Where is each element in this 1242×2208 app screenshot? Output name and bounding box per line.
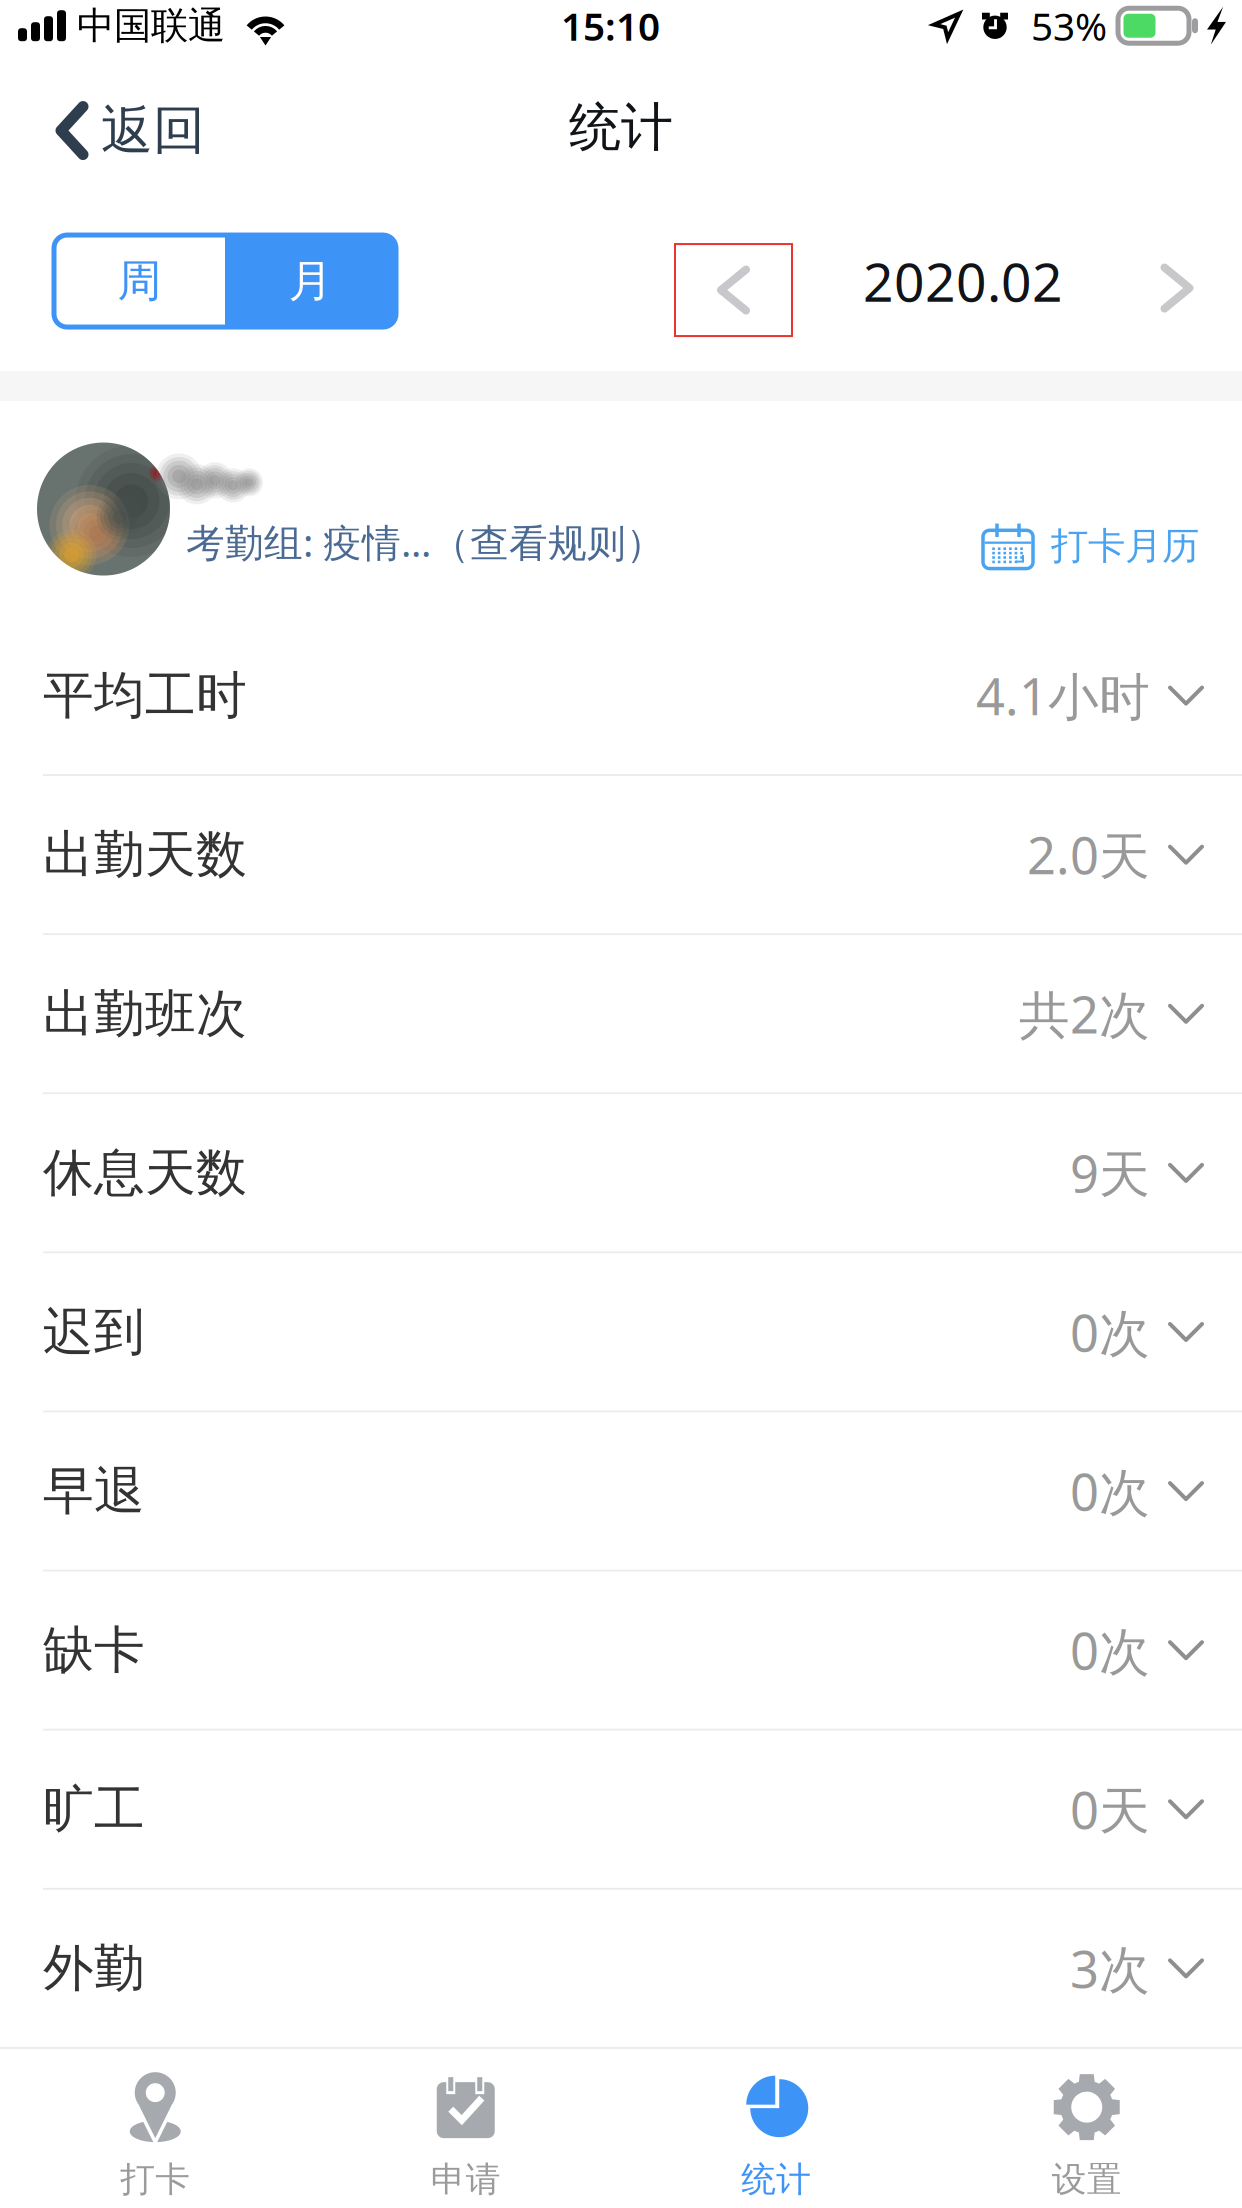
staticText: 返回 <box>101 99 205 162</box>
staticText: 共2次 <box>1019 980 1150 1047</box>
staticText: 平均工时 <box>43 664 247 727</box>
staticText: 3次 <box>1070 1935 1150 2002</box>
staticText: 2.0天 <box>1027 821 1150 888</box>
staticText: 0次 <box>1070 1298 1150 1366</box>
button[interactable]: 打卡 <box>0 2049 310 2208</box>
button[interactable]: 缺卡 <box>0 1572 1242 1729</box>
staticText: 统计 <box>569 96 673 159</box>
staticText: 早退 <box>43 1460 145 1522</box>
button[interactable]: 平均工时 <box>0 617 1242 774</box>
button[interactable]: 迟到 <box>0 1253 1242 1411</box>
staticText: 打卡 <box>120 2158 190 2201</box>
button[interactable]: 休息天数 <box>0 1094 1242 1251</box>
button[interactable]: 设置 <box>931 2049 1242 2208</box>
button[interactable]: Previous month <box>683 235 800 327</box>
staticText: 0天 <box>1070 1776 1150 1843</box>
button[interactable]: 月 <box>225 235 396 327</box>
staticText: 2020.02 <box>863 246 1063 316</box>
button[interactable]: Next month <box>1149 235 1219 327</box>
staticText: 月 <box>288 254 332 308</box>
staticText: 考勤组: 疫情...（查看规则） <box>186 516 665 568</box>
staticText: 4.1小时 <box>976 662 1150 729</box>
staticText: 打卡月历 <box>1051 523 1199 569</box>
staticText: 迟到 <box>43 1301 145 1363</box>
staticText: 出勤班次 <box>43 983 247 1045</box>
staticText: 0次 <box>1070 1617 1150 1684</box>
staticText: 外勤 <box>43 1937 145 1999</box>
staticText: 53% <box>1031 0 1107 51</box>
staticText: 申请 <box>431 2158 501 2201</box>
staticText: 0次 <box>1070 1457 1150 1525</box>
button[interactable]: 返回 <box>39 83 227 178</box>
button[interactable]: 早退 <box>0 1412 1242 1570</box>
staticText: 出勤天数 <box>43 824 247 886</box>
staticText: 统计 <box>741 2158 811 2201</box>
staticText: 周 <box>117 254 161 308</box>
button[interactable]: 出勤天数 <box>0 776 1242 933</box>
button[interactable]: 外勤 <box>0 1890 1242 2047</box>
staticText: 缺卡 <box>43 1619 145 1681</box>
button[interactable]: 申请 <box>310 2049 621 2208</box>
button[interactable]: 统计 <box>621 2049 931 2208</box>
staticText: 15:10 <box>561 0 660 51</box>
staticText: 休息天数 <box>43 1142 247 1204</box>
staticText: 旷工 <box>43 1778 145 1840</box>
staticText: 9天 <box>1070 1139 1150 1207</box>
staticText: 设置 <box>1052 2158 1122 2201</box>
button[interactable]: 旷工 <box>0 1731 1242 1888</box>
button[interactable]: 考勤组: 疫情...（查看规则） <box>0 401 1242 617</box>
button[interactable]: 出勤班次 <box>0 935 1242 1092</box>
button[interactable]: 周 <box>54 235 225 327</box>
staticText: 中国联通 <box>77 3 225 49</box>
